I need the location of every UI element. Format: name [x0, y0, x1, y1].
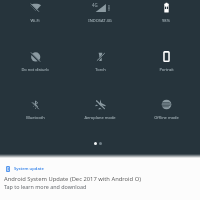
staticText: Torch — [95, 67, 106, 72]
staticText: Android System Update (Dec 2017 with And… — [4, 175, 141, 183]
staticText: Tap to learn more and download — [4, 183, 87, 190]
staticText: 4G — [92, 2, 98, 8]
staticText: Do not disturb — [21, 67, 49, 72]
button[interactable]: Aeroplane mode — [69, 96, 131, 122]
staticText: INDOSAT 4G — [88, 18, 112, 23]
button[interactable]: Mobile data — [69, 0, 131, 25]
staticText: System update — [14, 166, 44, 172]
button[interactable]: Do not disturb — [4, 48, 66, 74]
staticText: Portrait — [159, 67, 174, 72]
staticText: Aeroplane mode — [84, 115, 116, 120]
button[interactable]: Bluetooth — [4, 96, 66, 122]
button[interactable]: Offline mode — [135, 96, 197, 122]
staticText: 98% — [162, 18, 170, 23]
staticText: Wi-Fi — [30, 18, 40, 23]
button[interactable]: System update — [0, 158, 200, 200]
button[interactable]: Battery — [135, 0, 197, 25]
button[interactable]: Wi-Fi — [4, 0, 66, 25]
button[interactable]: Torch — [69, 48, 131, 74]
staticText: Bluetooth — [26, 115, 45, 120]
staticText: Offline mode — [154, 115, 179, 120]
button[interactable]: Portrait — [135, 48, 197, 74]
